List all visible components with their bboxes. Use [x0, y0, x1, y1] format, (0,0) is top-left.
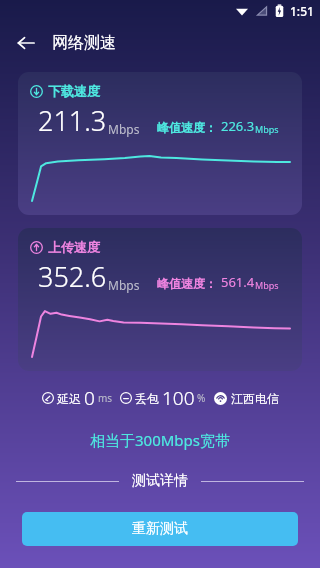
staticText: Mbps — [108, 277, 140, 293]
staticText: Mbps — [255, 123, 279, 135]
staticText: 重新测试 — [132, 520, 188, 538]
staticText: 江西电信 — [231, 391, 279, 406]
staticText: 352.6 — [38, 258, 107, 295]
staticText: 丢包 — [135, 391, 159, 406]
button[interactable]: Back — [12, 29, 40, 57]
staticText: Mbps — [108, 121, 140, 137]
staticText: 下载速度 — [48, 83, 100, 99]
staticText: 相当于300Mbps宽带 — [0, 430, 320, 450]
staticText: 211.3 — [38, 102, 107, 139]
staticText: 峰值速度： — [157, 120, 217, 135]
staticText: ms — [98, 391, 113, 405]
staticText: 测试详情 — [132, 472, 188, 490]
staticText: 1:51 — [290, 3, 314, 19]
button[interactable]: 上传速度 — [18, 228, 302, 371]
button[interactable]: 重新测试 — [22, 512, 298, 546]
staticText: 100 — [162, 385, 195, 411]
staticText: 561.4 — [221, 273, 255, 291]
staticText: 上传速度 — [48, 239, 100, 255]
staticText: Mbps — [255, 279, 279, 291]
staticText: 峰值速度： — [157, 276, 217, 291]
staticText: 226.3 — [221, 117, 255, 135]
staticText: % — [197, 391, 206, 405]
staticText: 网络测速 — [52, 33, 116, 53]
button[interactable]: 下载速度 — [18, 72, 302, 215]
staticText: 延迟 — [57, 391, 81, 406]
staticText: 0 — [84, 385, 95, 411]
